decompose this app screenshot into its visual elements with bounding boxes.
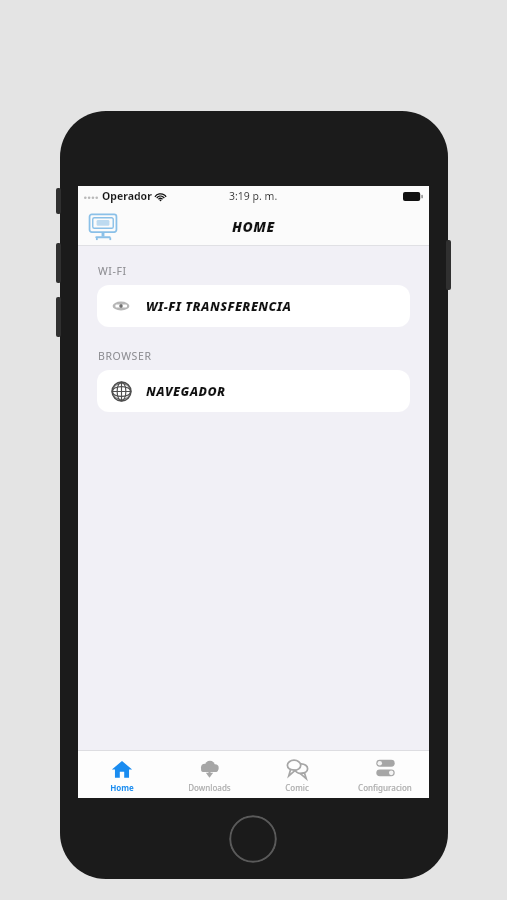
staticText: Operador bbox=[102, 189, 152, 203]
staticText: Configuracion bbox=[358, 782, 412, 793]
staticText: 3:19 p. m. bbox=[229, 189, 278, 203]
staticText: NAVEGADOR bbox=[146, 383, 226, 400]
staticText: Downloads bbox=[188, 782, 231, 793]
staticText: BROWSER bbox=[98, 349, 152, 363]
staticText: Comic bbox=[285, 782, 309, 793]
staticText: HOME bbox=[232, 217, 275, 236]
button[interactable]: Home bbox=[78, 751, 165, 798]
button[interactable]: Configuracion bbox=[341, 751, 429, 798]
button[interactable]: Ads bbox=[87, 210, 119, 242]
button[interactable]: Comic bbox=[253, 751, 341, 798]
staticText: WI-FI TRANSFERENCIA bbox=[146, 298, 292, 315]
button[interactable]: WI-FI TRANSFERENCIA bbox=[97, 285, 410, 327]
button[interactable]: NAVEGADOR bbox=[97, 370, 410, 412]
button[interactable]: Downloads bbox=[165, 751, 253, 798]
staticText: WI-FI bbox=[98, 264, 127, 278]
button[interactable]: Home button bbox=[229, 815, 277, 863]
staticText: Home bbox=[110, 782, 134, 793]
